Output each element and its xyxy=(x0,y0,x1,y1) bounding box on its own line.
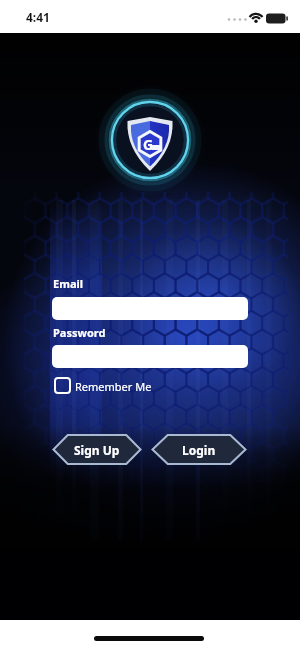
staticText: 4:41 xyxy=(26,9,50,25)
staticText: Sign Up xyxy=(74,442,120,458)
staticText: Login xyxy=(182,442,216,458)
staticText: G xyxy=(143,135,154,154)
staticText: Remember Me xyxy=(75,379,152,394)
button[interactable] xyxy=(52,297,248,320)
button[interactable]: Sign Up xyxy=(52,434,142,465)
button[interactable]: Login xyxy=(151,434,247,465)
button[interactable] xyxy=(54,377,71,394)
staticText: Email xyxy=(53,276,84,291)
button[interactable] xyxy=(52,345,248,368)
staticText: Password xyxy=(53,325,106,340)
